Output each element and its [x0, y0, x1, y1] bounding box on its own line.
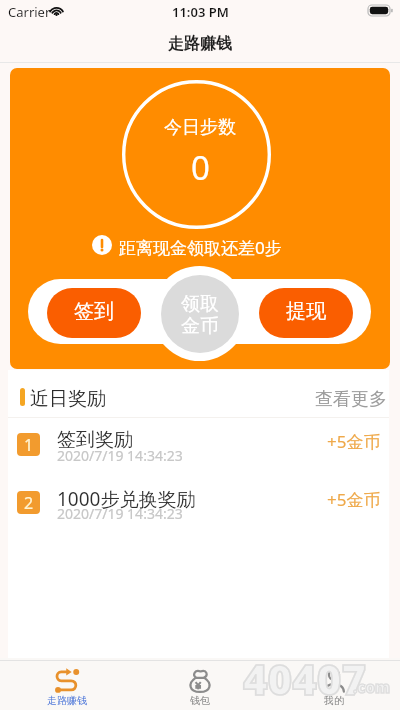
staticText: 我的 [324, 694, 344, 707]
staticText: .com [353, 677, 390, 697]
staticText: 近日奖励 [30, 387, 106, 411]
staticText: 今日步数 [164, 116, 236, 139]
staticText: 1 [24, 434, 34, 456]
staticText: 40407 [243, 650, 367, 707]
button[interactable]: 查看更多 [307, 380, 395, 419]
button[interactable]: 1 [8, 415, 389, 473]
staticText: +5金币 [327, 430, 381, 453]
staticText: 2020/7/19 14:34:23 [57, 504, 183, 523]
other: Battery full [368, 5, 393, 16]
staticText: 40407 [243, 650, 367, 707]
staticText: 走路赚钱 [168, 34, 232, 54]
staticText: 查看更多 [315, 388, 387, 411]
button[interactable]: 签到 [47, 288, 141, 338]
other: Wi-Fi signal [50, 5, 63, 16]
button[interactable]: 提现 [259, 288, 353, 338]
staticText: Carrier [8, 3, 51, 21]
staticText: 钱包 [190, 694, 210, 707]
button[interactable]: 钱包 [133, 661, 266, 710]
staticText: 2020/7/19 14:34:23 [57, 446, 183, 465]
button[interactable]: 我的 [267, 661, 400, 710]
staticText: 11:03 PM [172, 3, 229, 21]
staticText: 签到奖励 [57, 428, 133, 452]
staticText: 距离现金领取还差0步 [119, 236, 282, 259]
staticText: +5金币 [327, 488, 381, 511]
staticText: 1000步兑换奖励 [57, 486, 196, 512]
staticText: 签到 [74, 299, 114, 324]
staticText: .com [353, 677, 390, 697]
staticText: 2 [24, 492, 34, 514]
button[interactable]: 2 [8, 473, 389, 531]
staticText: 0 [191, 145, 210, 190]
button[interactable]: 领取 [161, 275, 239, 353]
staticText: 提现 [286, 299, 326, 324]
staticText: 领取 [181, 292, 219, 316]
staticText: 走路赚钱 [47, 694, 87, 707]
staticText: 金币 [181, 314, 219, 338]
button[interactable]: 走路赚钱 [0, 661, 133, 710]
